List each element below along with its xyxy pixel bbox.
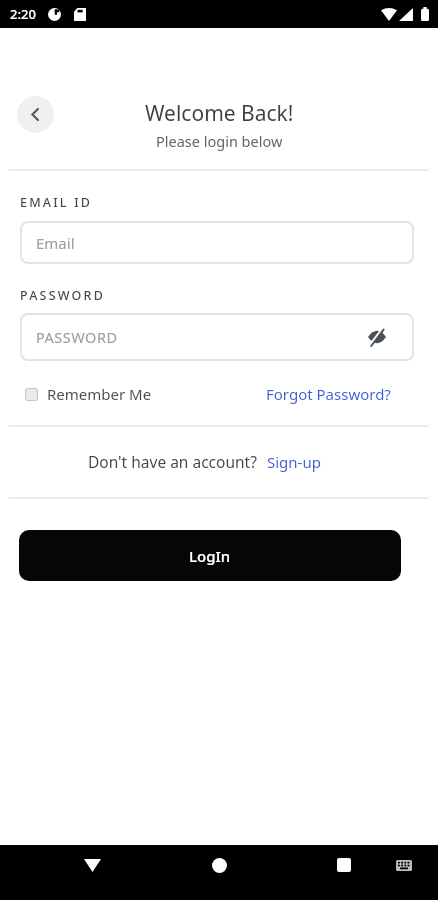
button[interactable] [203, 851, 236, 884]
button[interactable]: PASSWORD [20, 313, 414, 361]
staticText: Please login below [156, 131, 283, 151]
button[interactable]: Email [20, 221, 414, 264]
button[interactable] [390, 853, 418, 881]
staticText: Welcome Back! [145, 99, 294, 128]
button[interactable] [327, 851, 360, 884]
staticText: PASSWORD [36, 327, 118, 347]
button[interactable] [76, 851, 109, 884]
staticText: Remember Me [47, 384, 152, 404]
staticText: Don't have an account? [88, 451, 257, 472]
staticText: 2:20 [10, 5, 36, 23]
button[interactable]: Forgot Password? [266, 384, 414, 404]
staticText: PASSWORD [20, 287, 106, 304]
button[interactable]: Sign-up [267, 452, 321, 472]
button[interactable]: LogIn [19, 530, 401, 581]
staticText: Email [36, 233, 75, 253]
button[interactable] [17, 96, 54, 133]
button[interactable]: Remember Me [20, 384, 152, 404]
staticText: LogIn [189, 546, 231, 566]
staticText: EMAIL ID [20, 194, 93, 211]
